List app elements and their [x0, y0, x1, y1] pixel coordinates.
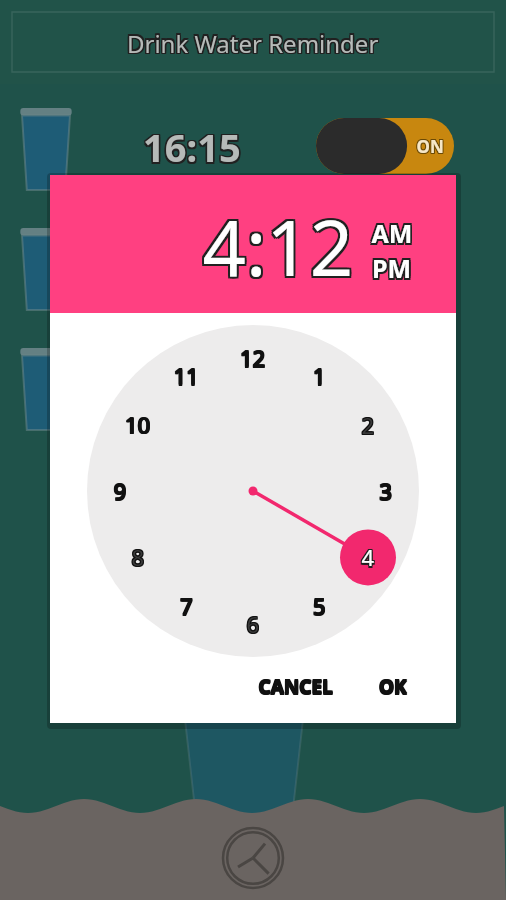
button[interactable]: AM	[368, 214, 416, 246]
button[interactable]: Selected time 4:12	[196, 200, 356, 290]
button[interactable]: Clock face, select hour	[87, 325, 419, 657]
button[interactable]: Clock	[218, 823, 288, 893]
button[interactable]	[252, 666, 342, 708]
button[interactable]	[364, 666, 424, 708]
button[interactable]: PM	[368, 250, 416, 282]
button[interactable]: Reminder on/off toggle	[316, 118, 454, 174]
